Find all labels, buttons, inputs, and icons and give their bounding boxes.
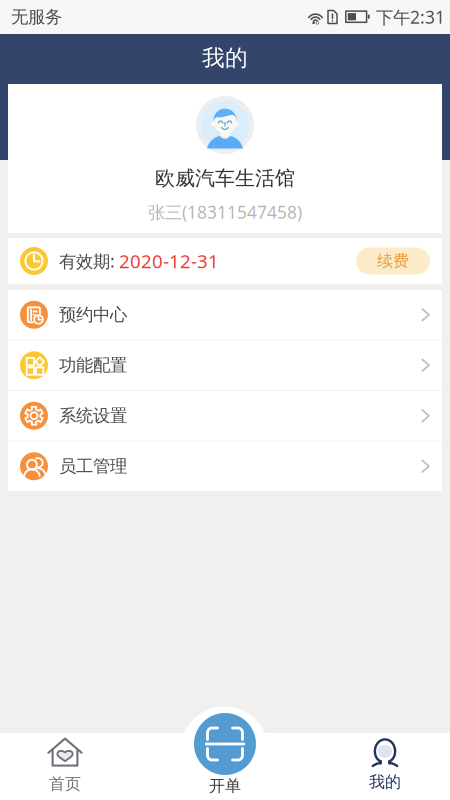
button[interactable]: 续费 xyxy=(356,247,430,274)
button[interactable]: 预约中心 xyxy=(8,290,442,339)
staticText: 欧威汽车生活馆 xyxy=(155,166,295,191)
button[interactable]: 开单 xyxy=(194,713,256,775)
button[interactable]: 首页 xyxy=(0,733,130,800)
staticText: 预约中心 xyxy=(59,304,127,325)
staticText: 下午2:31 xyxy=(376,5,445,28)
staticText: 开单 xyxy=(209,776,241,796)
button[interactable]: 开单 xyxy=(130,733,320,800)
staticText: 无服务 xyxy=(11,6,62,28)
staticText: 功能配置 xyxy=(59,355,127,376)
staticText: 员工管理 xyxy=(59,456,127,477)
staticText: 系统设置 xyxy=(59,405,127,426)
button[interactable]: 员工管理 xyxy=(8,441,442,491)
staticText: 我的 xyxy=(369,772,401,792)
staticText: 有效期: xyxy=(59,249,115,272)
staticText: 2020-12-31 xyxy=(119,249,219,273)
button[interactable]: 系统设置 xyxy=(8,391,442,440)
staticText: 续费 xyxy=(377,251,409,271)
staticText: 张三(18311547458) xyxy=(148,201,302,224)
button[interactable]: 我的 xyxy=(320,733,450,800)
staticText: 首页 xyxy=(49,774,81,794)
button[interactable]: 功能配置 xyxy=(8,340,442,390)
staticText: 我的 xyxy=(202,44,248,72)
